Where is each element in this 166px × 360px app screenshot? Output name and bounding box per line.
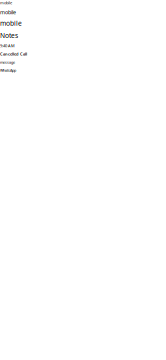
staticText: message	[0, 60, 15, 65]
staticText: Notes	[0, 31, 18, 40]
staticText: mobile	[0, 19, 22, 28]
staticText: 9:40 AM	[0, 43, 15, 48]
staticText: Cancelled Call	[0, 51, 27, 57]
staticText: mobile	[0, 0, 12, 5]
staticText: WhatsApp	[0, 68, 16, 73]
staticText: mobile	[0, 8, 16, 16]
